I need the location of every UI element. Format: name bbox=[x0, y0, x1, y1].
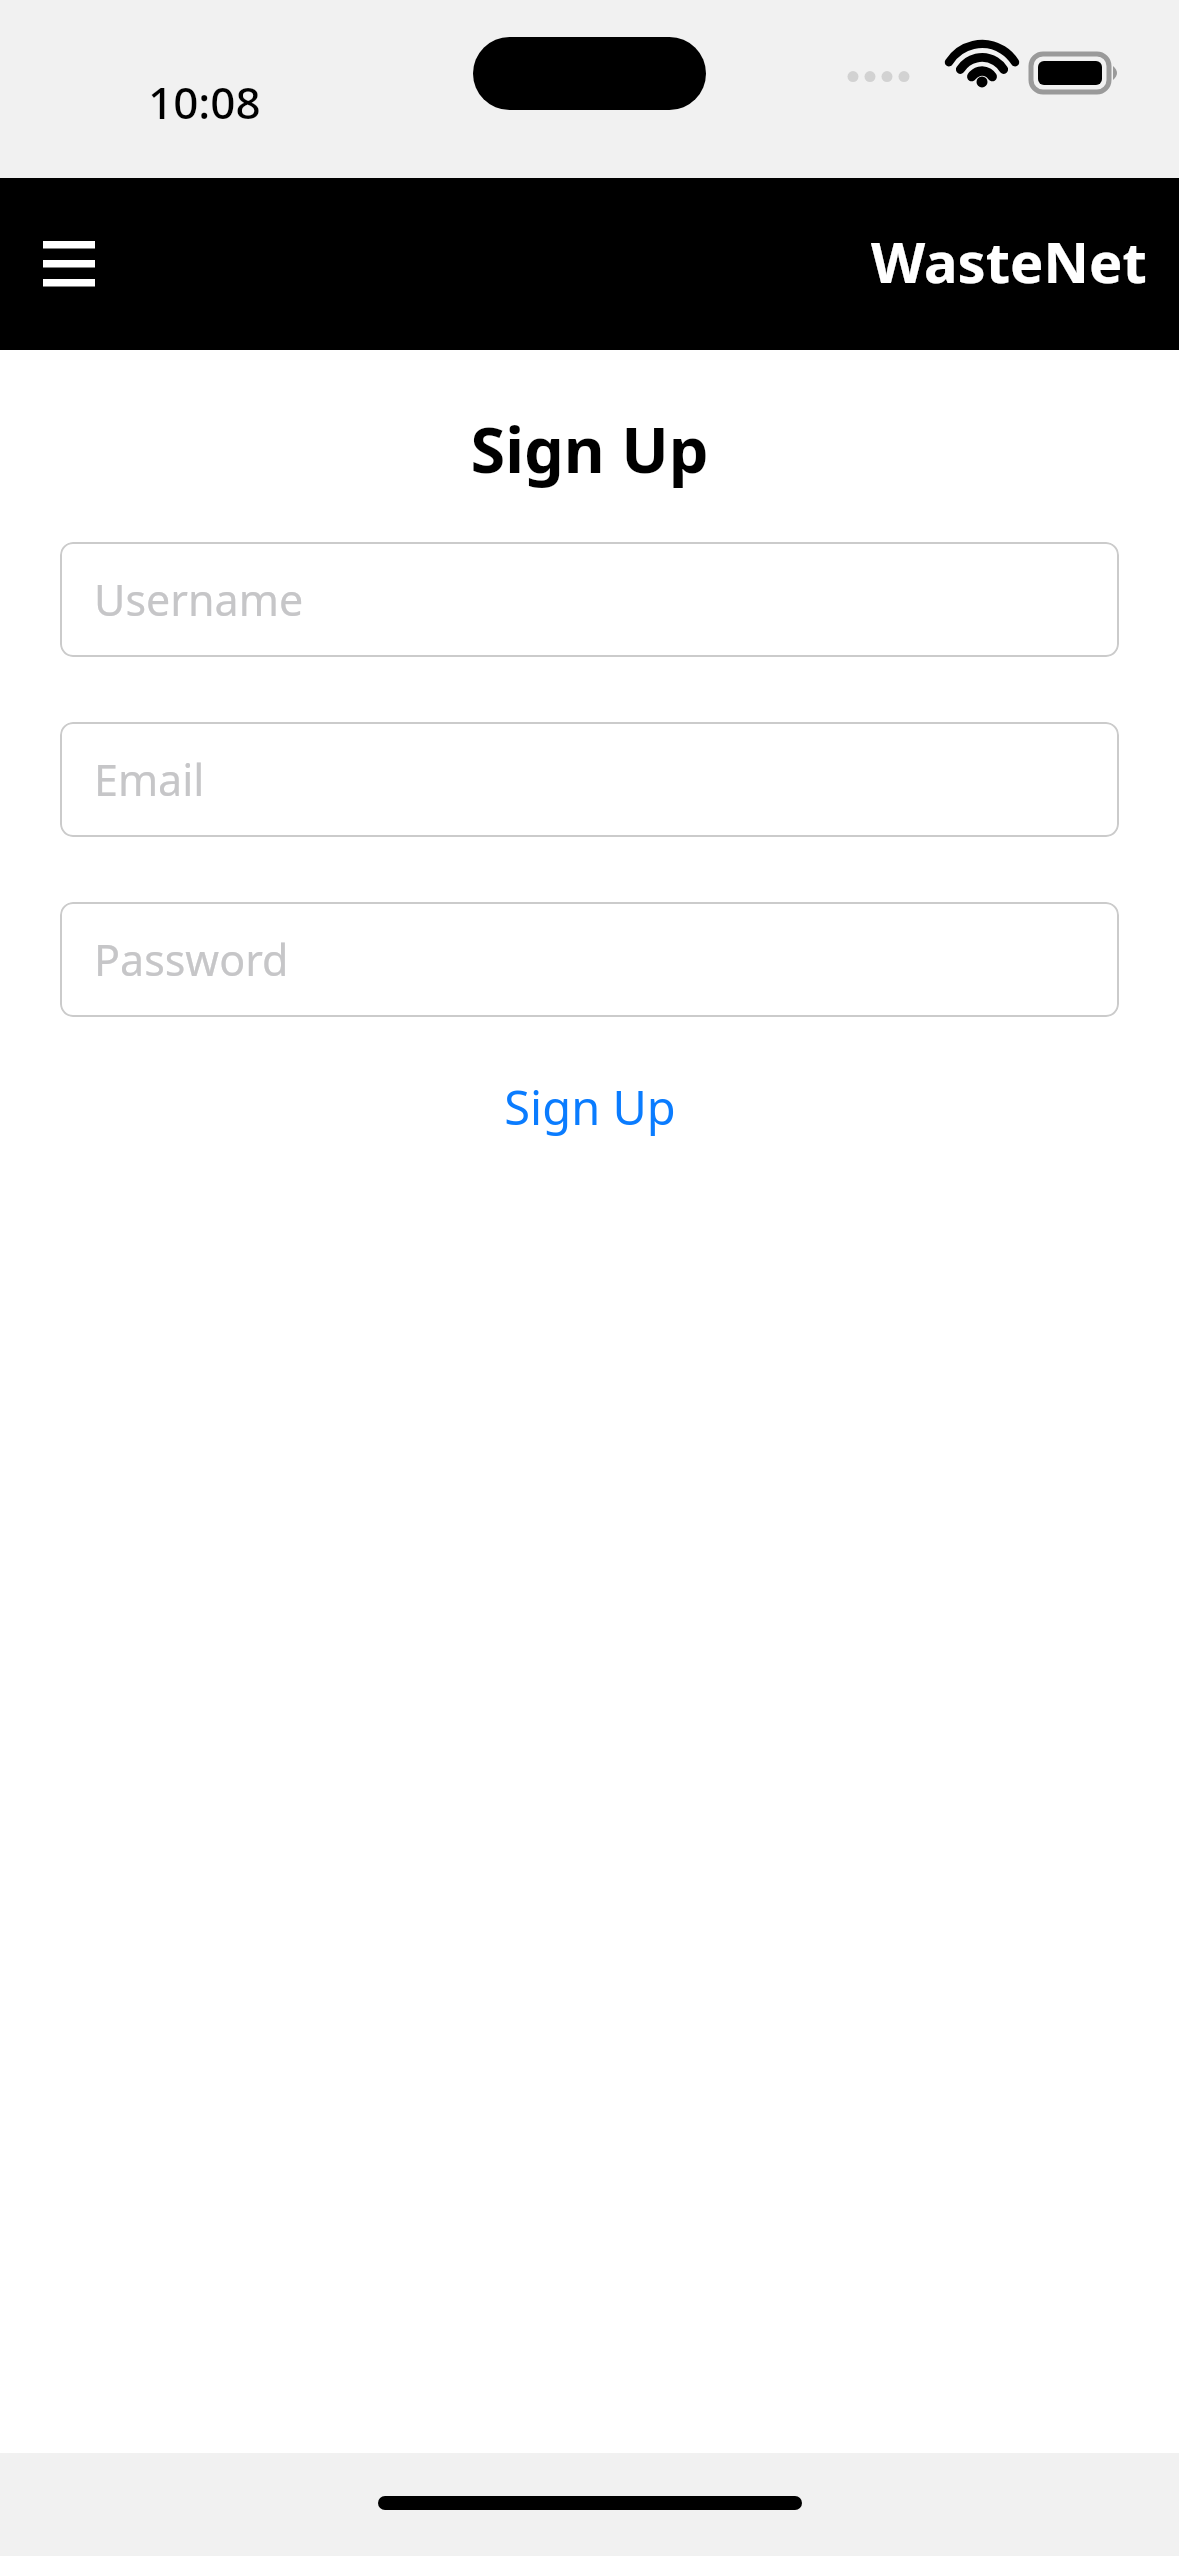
staticText: Password bbox=[94, 930, 289, 989]
button[interactable]: Email bbox=[60, 722, 1119, 837]
button[interactable]: Password bbox=[60, 902, 1119, 1017]
staticText: 10:08 bbox=[148, 72, 261, 132]
button[interactable]: Open navigation menu bbox=[14, 209, 124, 319]
button[interactable]: Username bbox=[60, 542, 1119, 657]
staticText: WasteNet bbox=[871, 223, 1147, 299]
staticText: Username bbox=[94, 570, 304, 629]
staticText: Email bbox=[94, 750, 205, 809]
button[interactable]: Sign Up bbox=[0, 1060, 1179, 1154]
staticText: Sign Up bbox=[504, 1075, 676, 1139]
staticText: Sign Up bbox=[0, 406, 1179, 492]
